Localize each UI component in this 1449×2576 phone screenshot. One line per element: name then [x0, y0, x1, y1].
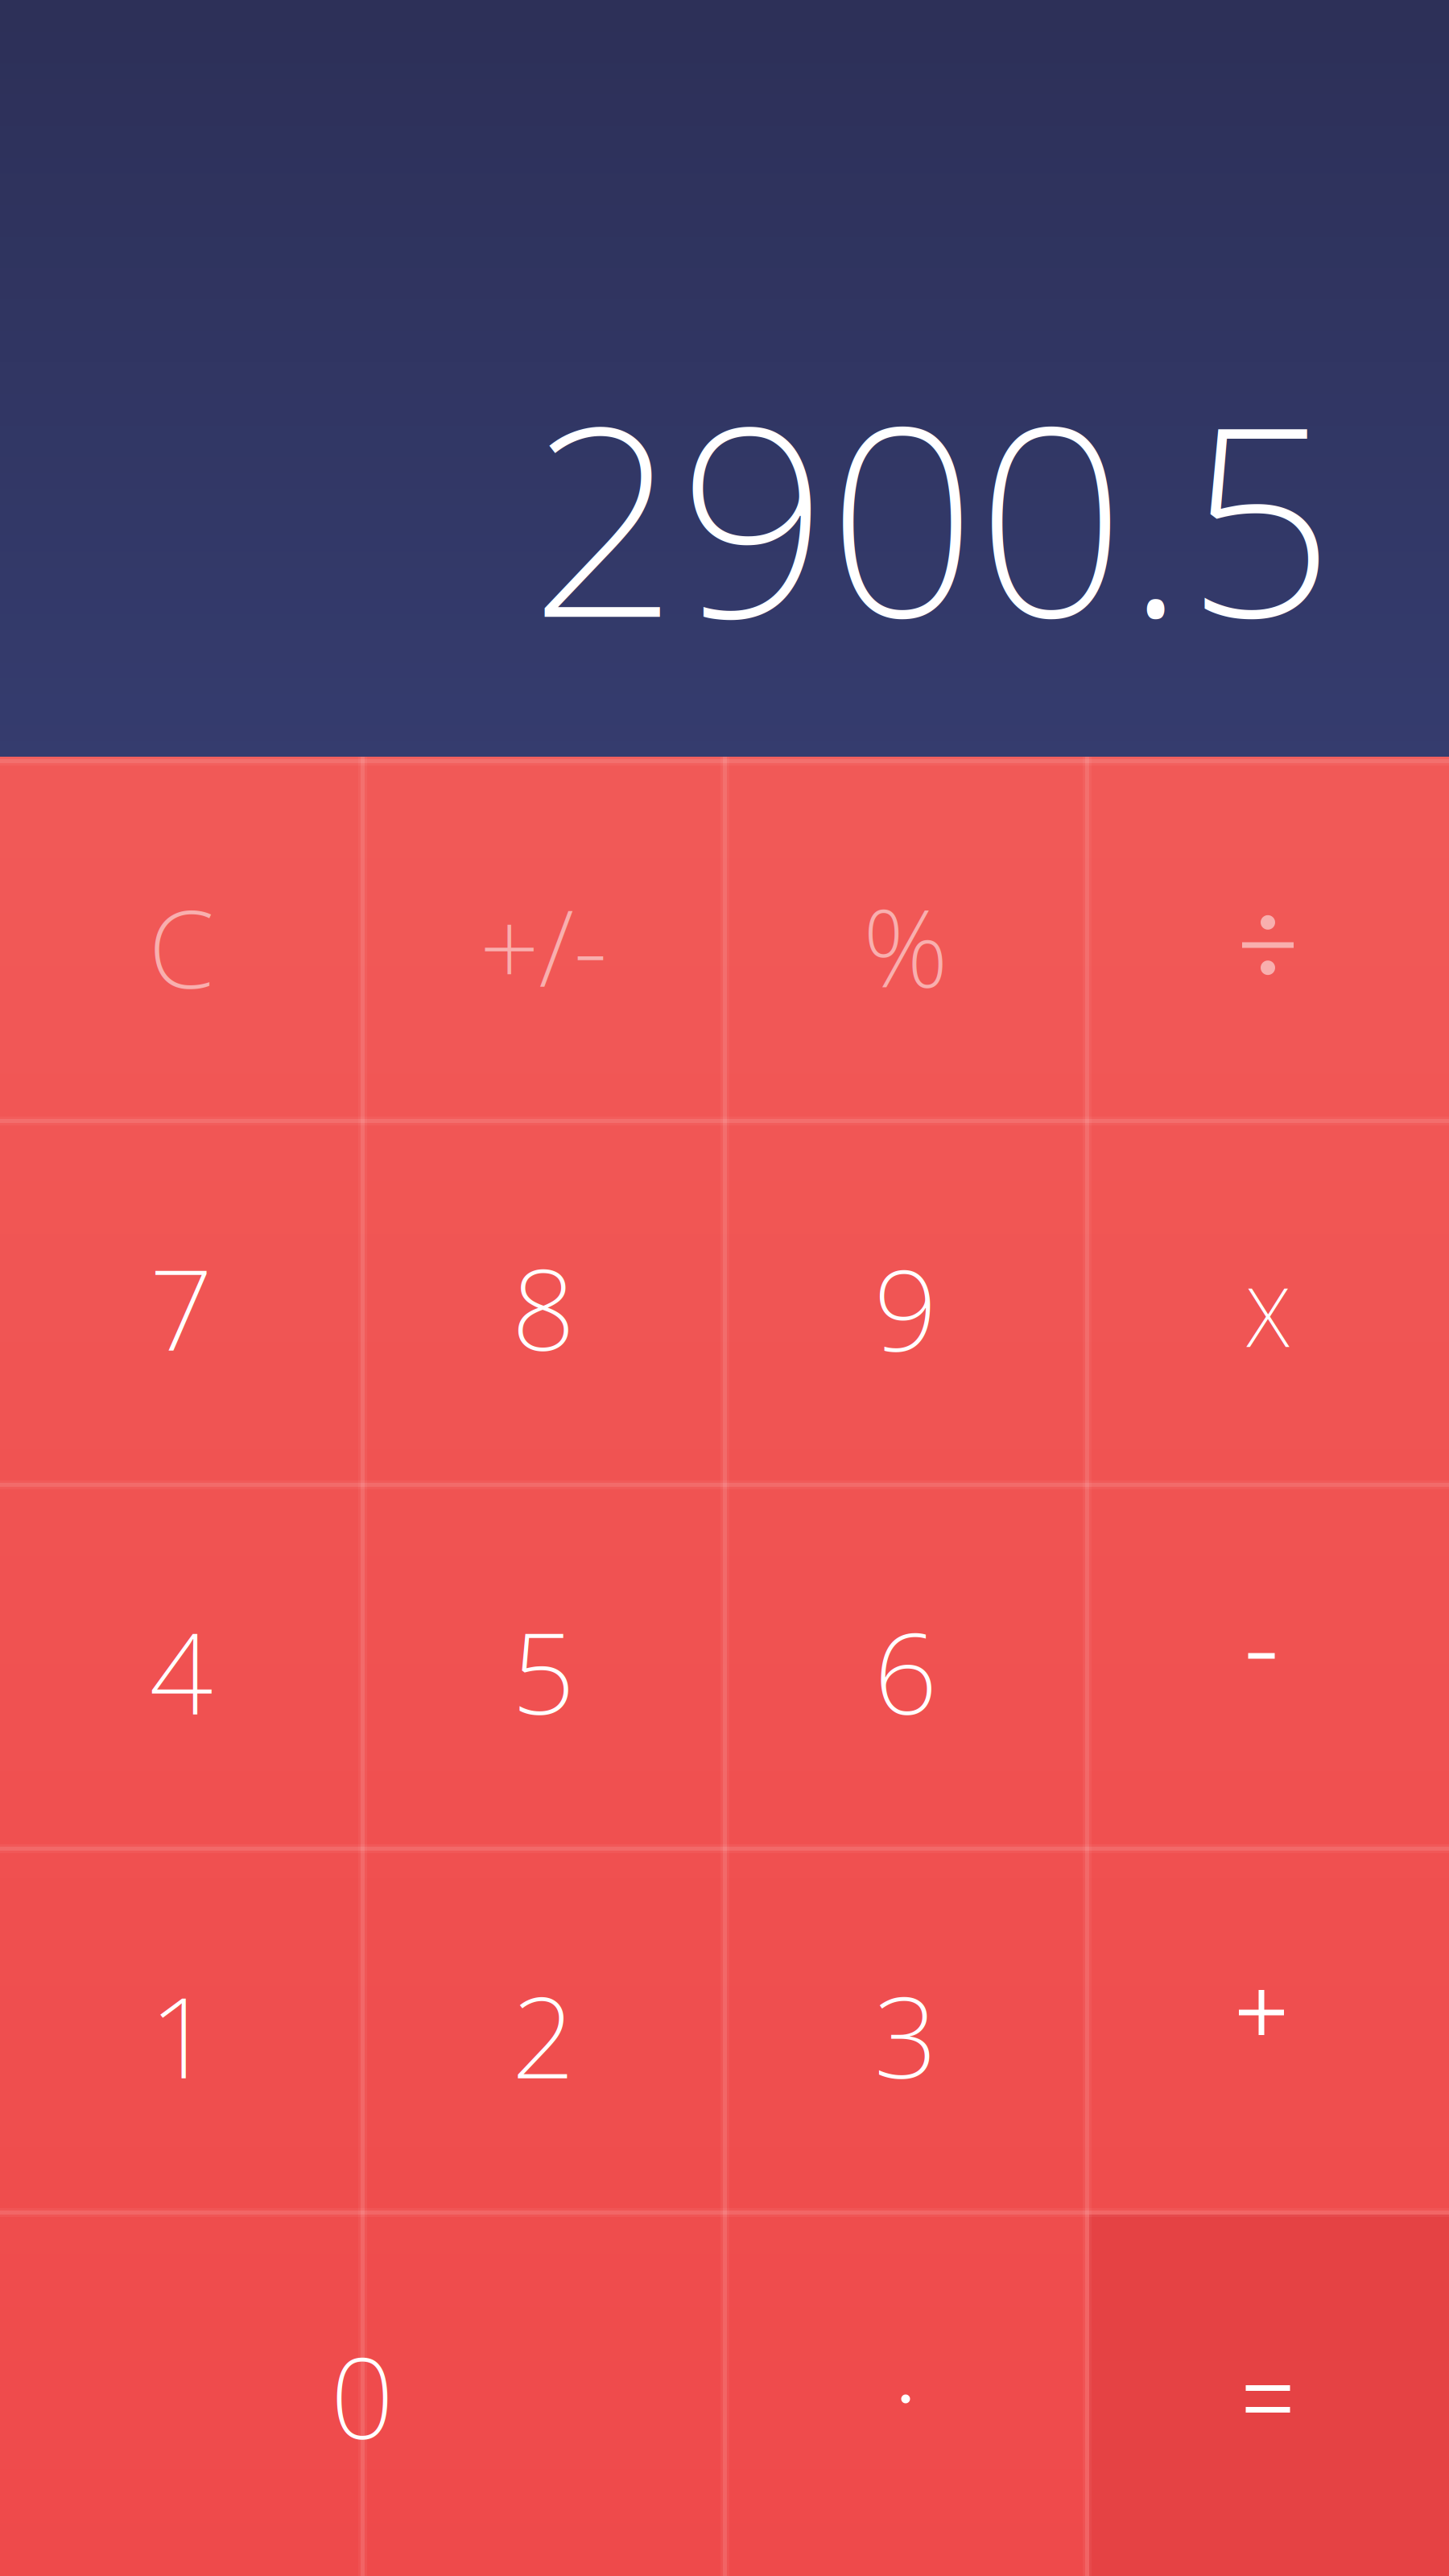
- staticText: 2: [512, 1961, 575, 2109]
- button[interactable]: 4: [0, 1484, 362, 1848]
- staticText: +/-: [479, 876, 607, 1016]
- button[interactable]: Toggle sign: [362, 757, 724, 1121]
- button[interactable]: 8: [362, 1121, 724, 1484]
- staticText: 6: [874, 1597, 937, 1745]
- staticText: 9: [874, 1233, 937, 1381]
- staticText: C: [148, 875, 214, 1018]
- staticText: 7: [149, 1233, 213, 1381]
- button[interactable]: Minus: [1087, 1484, 1449, 1848]
- button[interactable]: 3: [724, 1848, 1087, 2212]
- button[interactable]: 6: [724, 1484, 1087, 1848]
- staticText: 4: [149, 1597, 213, 1745]
- staticText: 8: [512, 1233, 575, 1381]
- staticText: 5: [512, 1597, 575, 1745]
- button[interactable]: 7: [0, 1121, 362, 1484]
- staticText: X: [1247, 1261, 1289, 1370]
- button[interactable]: Plus: [1087, 1848, 1449, 2212]
- staticText: %: [863, 875, 949, 1017]
- button[interactable]: Multiply: [1087, 1121, 1449, 1484]
- button[interactable]: 0: [0, 2212, 724, 2576]
- button[interactable]: 9: [724, 1121, 1087, 1484]
- button[interactable]: 1: [0, 1848, 362, 2212]
- button[interactable]: Clear: [0, 757, 362, 1121]
- button[interactable]: Percent: [724, 757, 1087, 1121]
- staticText: 3: [874, 1961, 937, 2109]
- staticText: 0: [330, 2322, 394, 2470]
- button[interactable]: 2: [362, 1848, 724, 2212]
- button[interactable]: Decimal point: [724, 2212, 1087, 2576]
- button[interactable]: 5: [362, 1484, 724, 1848]
- staticText: 1: [149, 1961, 213, 2109]
- button[interactable]: Divide: [1087, 757, 1449, 1121]
- staticText: 2900.5: [530, 341, 1335, 689]
- button[interactable]: Equals: [1087, 2212, 1449, 2576]
